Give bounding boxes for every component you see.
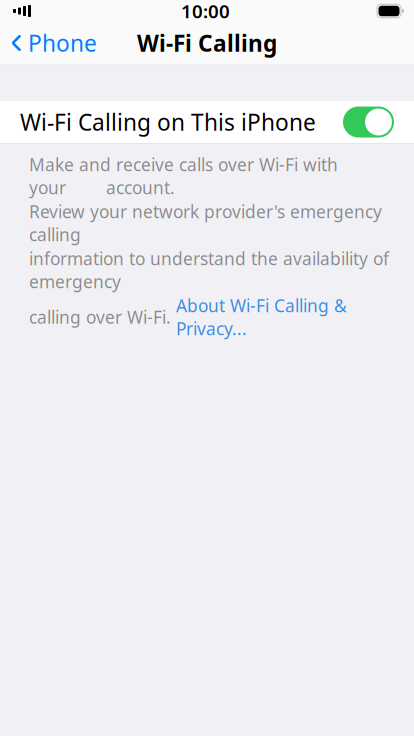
- staticText: Make and receive calls over Wi-Fi with y…: [29, 153, 338, 199]
- staticText: About Wi-Fi Calling & Privacy...: [176, 294, 347, 340]
- staticText: calling over Wi-Fi.: [29, 306, 176, 329]
- staticText: 10:00: [181, 0, 230, 23]
- staticText: Review your network provider's emergency…: [29, 200, 382, 246]
- button[interactable]: Wi-Fi Calling on This iPhone: [0, 100, 414, 143]
- staticText: Phone: [28, 28, 97, 58]
- button[interactable]: Phone: [0, 22, 97, 64]
- button[interactable]: About Wi-Fi Calling & Privacy...: [176, 294, 347, 340]
- staticText: Wi-Fi Calling on This iPhone: [20, 107, 316, 137]
- staticText: information to understand the availabili…: [29, 247, 389, 293]
- staticText: Wi-Fi Calling: [137, 28, 277, 58]
